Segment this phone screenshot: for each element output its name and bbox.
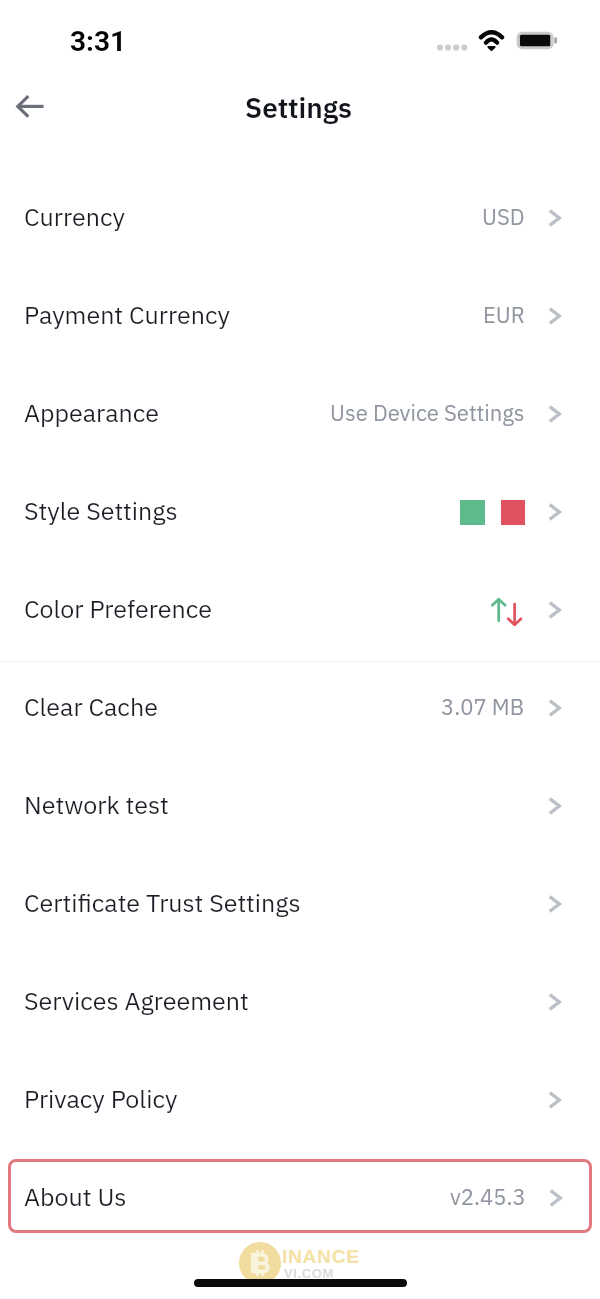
staticText: USD xyxy=(482,202,525,231)
staticText: Style Settings xyxy=(24,494,178,527)
staticText: Settings xyxy=(245,89,352,125)
button[interactable]: Currency xyxy=(0,167,600,265)
button[interactable]: Style Settings xyxy=(0,461,600,559)
staticText: VI.COM xyxy=(284,1266,334,1281)
button[interactable]: Privacy Policy xyxy=(0,1049,600,1147)
staticText: Certificate Trust Settings xyxy=(24,886,301,919)
staticText: Privacy Policy xyxy=(24,1082,178,1115)
staticText: v2.45.3 xyxy=(450,1182,526,1211)
button[interactable]: Color Preference xyxy=(0,559,600,657)
staticText: EUR xyxy=(483,300,525,329)
staticText: Payment Currency xyxy=(24,298,230,331)
staticText: Color Preference xyxy=(24,592,212,625)
staticText: 3:31 xyxy=(70,25,127,58)
staticText: Clear Cache xyxy=(24,690,158,723)
staticText: Currency xyxy=(24,200,125,233)
staticText: Use Device Settings xyxy=(330,398,525,427)
button[interactable]: Back xyxy=(0,78,60,144)
staticText: INANCE xyxy=(282,1246,360,1267)
staticText: Services Agreement xyxy=(24,984,249,1017)
staticText: 3.07 MB xyxy=(441,692,525,721)
button[interactable]: Certificate Trust Settings xyxy=(0,853,600,951)
button[interactable]: Clear Cache xyxy=(0,657,600,755)
button[interactable]: Appearance xyxy=(0,363,600,461)
button[interactable]: Services Agreement xyxy=(0,951,600,1049)
button[interactable]: Network test xyxy=(0,755,600,853)
button[interactable]: Payment Currency xyxy=(0,265,600,363)
button[interactable]: About Us xyxy=(8,1159,592,1233)
staticText: About Us xyxy=(24,1180,127,1213)
staticText: Network test xyxy=(24,788,169,821)
staticText: Appearance xyxy=(24,396,159,429)
